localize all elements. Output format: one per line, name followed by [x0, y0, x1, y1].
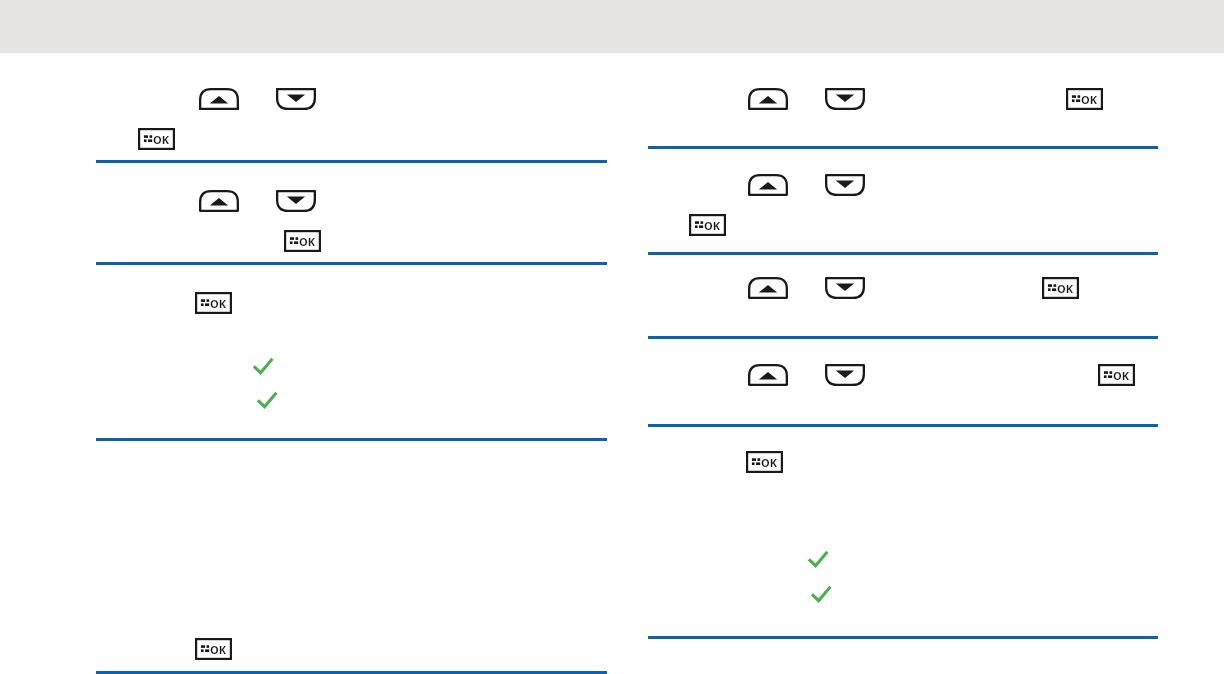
button[interactable]: OK — [746, 451, 783, 473]
staticText: OK — [761, 455, 778, 470]
button[interactable]: Scroll down — [825, 364, 865, 386]
button[interactable]: OK — [1042, 277, 1079, 299]
button[interactable]: Scroll up — [748, 277, 788, 299]
button[interactable]: OK — [195, 292, 232, 314]
staticText: OK — [1113, 368, 1130, 383]
staticText: OK — [1081, 92, 1098, 107]
button[interactable]: Scroll up — [199, 88, 239, 110]
button[interactable]: Scroll down — [825, 174, 865, 196]
button[interactable]: Scroll up — [199, 190, 239, 212]
button[interactable]: Scroll up — [748, 88, 788, 110]
staticText: OK — [210, 642, 227, 657]
staticText: OK — [153, 132, 170, 147]
staticText: OK — [210, 296, 227, 311]
button[interactable]: OK — [689, 214, 726, 236]
button[interactable]: OK — [195, 638, 232, 660]
staticText: OK — [299, 234, 316, 249]
staticText: OK — [1057, 281, 1074, 296]
staticText: OK — [704, 218, 721, 233]
button[interactable]: OK — [138, 128, 175, 150]
button[interactable]: Scroll up — [748, 174, 788, 196]
button[interactable]: Scroll down — [276, 190, 316, 212]
button[interactable]: Scroll down — [276, 88, 316, 110]
button[interactable]: Scroll down — [825, 88, 865, 110]
button[interactable]: OK — [284, 230, 321, 252]
button[interactable]: OK — [1066, 88, 1103, 110]
button[interactable]: Scroll up — [748, 364, 788, 386]
button[interactable]: Scroll down — [825, 277, 865, 299]
button[interactable]: OK — [1098, 364, 1135, 386]
